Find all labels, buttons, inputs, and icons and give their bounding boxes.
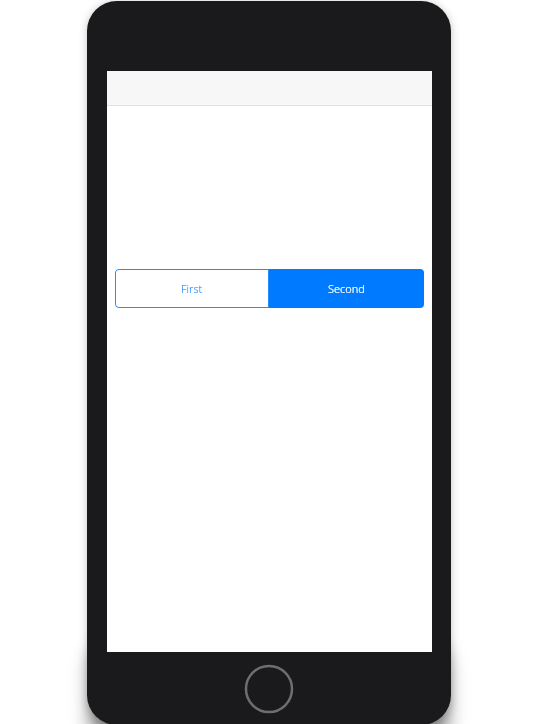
staticText: First xyxy=(181,281,203,296)
button[interactable]: Second xyxy=(269,269,424,308)
button[interactable]: First xyxy=(115,269,269,308)
staticText: Second xyxy=(328,281,365,296)
